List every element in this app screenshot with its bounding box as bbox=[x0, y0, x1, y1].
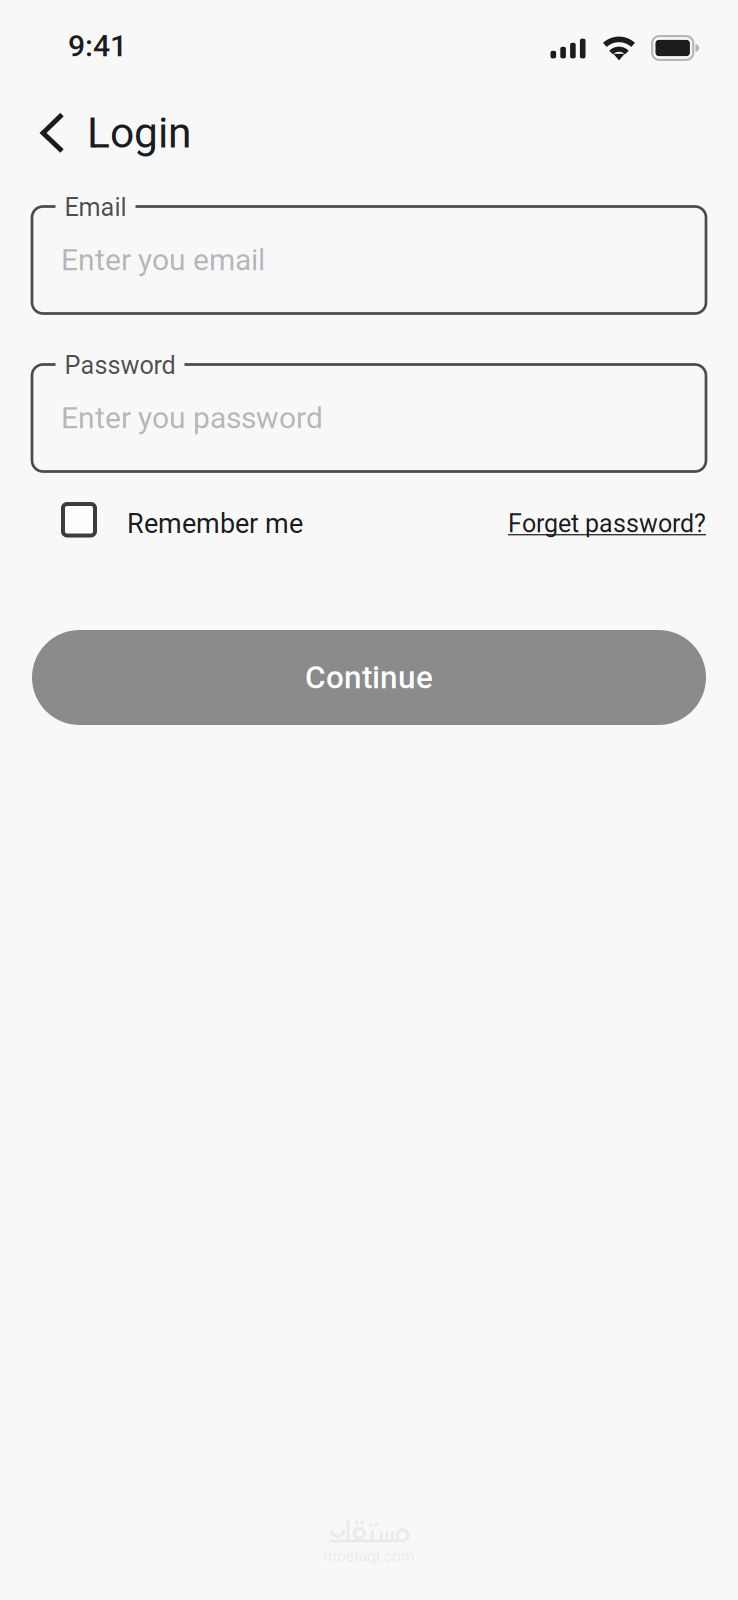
staticText: Password bbox=[64, 350, 175, 380]
staticText: mostaql.com bbox=[323, 1547, 415, 1565]
staticText: Forget password? bbox=[508, 509, 706, 538]
staticText: Remember me bbox=[127, 508, 303, 539]
button[interactable]: Remember me bbox=[32, 506, 303, 541]
staticText: Email bbox=[64, 192, 126, 222]
staticText: Continue bbox=[305, 659, 433, 696]
staticText: Enter you password bbox=[61, 400, 323, 436]
staticText: Enter you email bbox=[61, 242, 265, 278]
button[interactable]: Back bbox=[34, 102, 71, 164]
staticText: Login bbox=[87, 108, 191, 158]
staticText: 9:41 bbox=[68, 28, 127, 64]
button[interactable]: Forget password? bbox=[508, 509, 706, 538]
button[interactable]: Continue bbox=[32, 630, 706, 725]
